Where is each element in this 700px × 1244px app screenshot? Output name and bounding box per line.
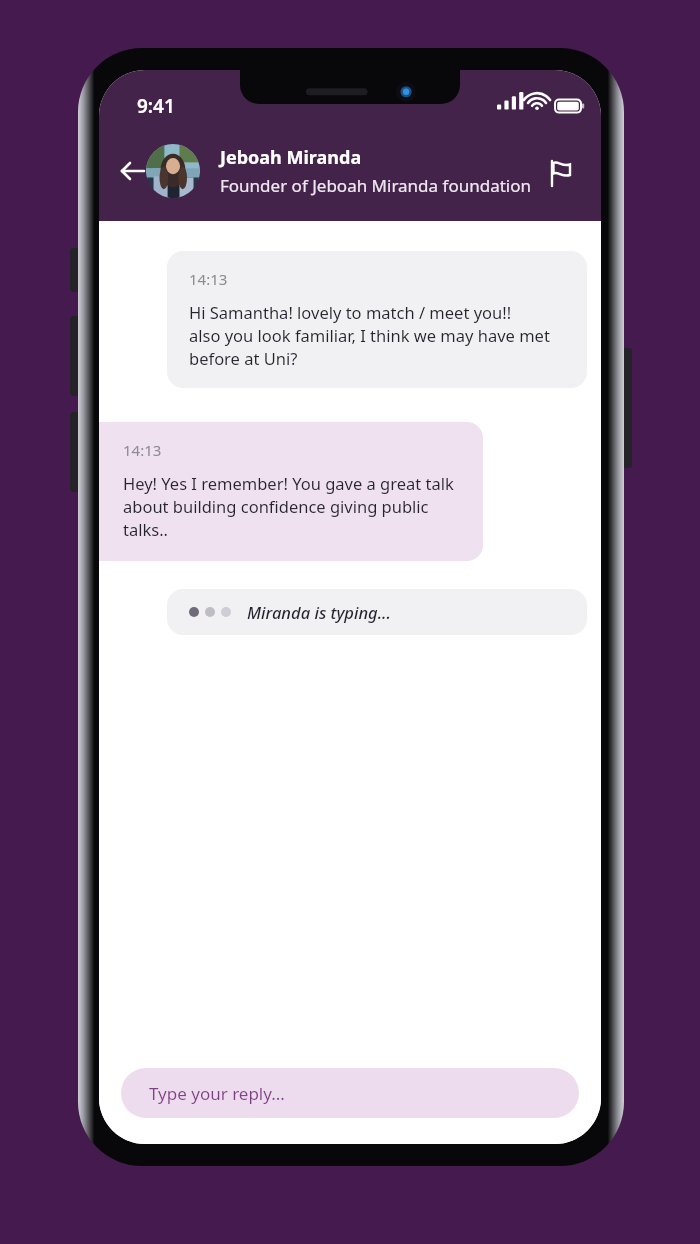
staticText: Miranda is typing... <box>247 601 391 623</box>
button[interactable]: Report <box>539 150 585 196</box>
staticText: 14:13 <box>123 440 162 460</box>
button[interactable]: 14:13 <box>99 422 483 561</box>
staticText: Founder of Jeboah Miranda foundation <box>220 174 531 197</box>
staticText: Hi Samantha! lovely to match / meet you!… <box>189 301 550 370</box>
staticText: 9:41 <box>137 93 175 119</box>
button[interactable]: Miranda is typing... <box>167 589 587 635</box>
button[interactable]: Type your reply... <box>121 1068 579 1118</box>
button[interactable]: Back <box>109 148 155 194</box>
button[interactable]: 14:13 <box>167 251 587 388</box>
staticText: Hey! Yes I remember! You gave a great ta… <box>123 472 461 541</box>
staticText: Type your reply... <box>149 1082 285 1105</box>
staticText: Jeboah Miranda <box>220 145 362 170</box>
staticText: 14:13 <box>189 269 228 289</box>
